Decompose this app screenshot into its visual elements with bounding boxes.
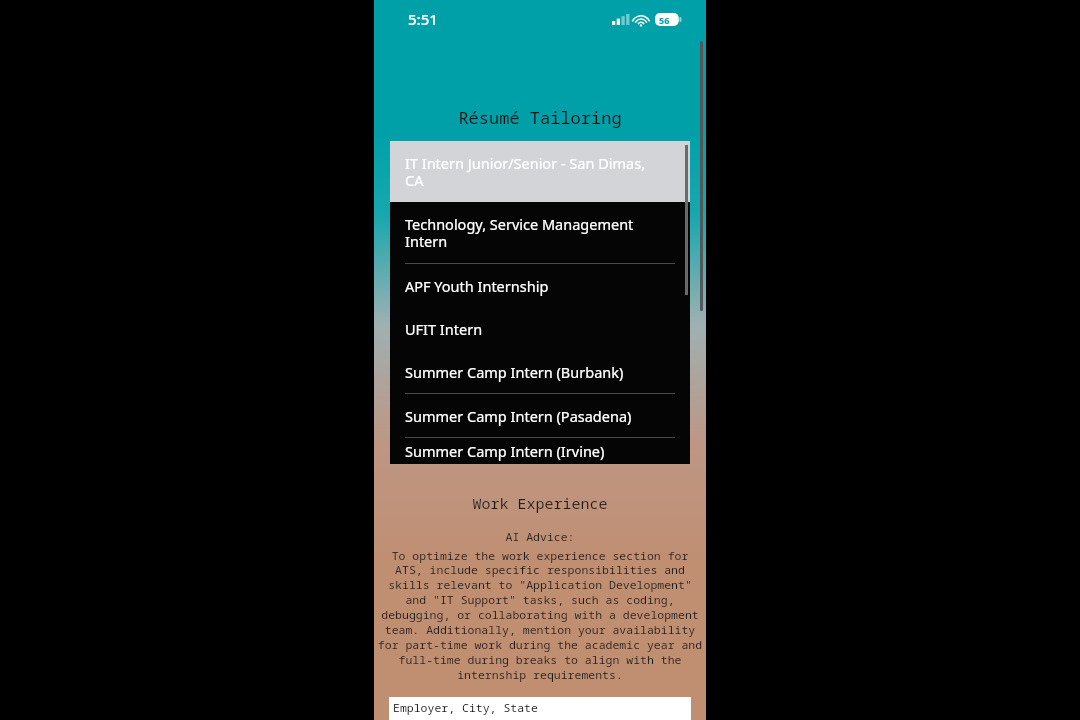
button[interactable]: Resume editor [389,697,691,720]
button[interactable]: Summer Camp Intern (Irvine) [390,438,690,464]
button[interactable]: Summer Camp Intern (Pasadena) [390,394,690,437]
staticText: Summer Camp Intern (Burbank) [405,362,624,382]
staticText: 56 [659,14,670,26]
button[interactable]: Summer Camp Intern (Burbank) [390,350,690,393]
staticText: UFIT Intern [405,319,483,339]
staticText: Summer Camp Intern (Pasadena) [405,406,632,426]
staticText: Employer, City, State [393,700,538,716]
staticText: 5:51 [408,9,438,29]
button[interactable]: IT Intern Junior/Senior - San Dimas, CA [390,141,690,202]
button[interactable]: APF Youth Internship [390,264,690,307]
staticText: IT Intern Junior/Senior - San Dimas, CA [405,153,666,190]
staticText: APF Youth Internship [405,276,549,296]
staticText: AI Advice: [374,529,706,545]
staticText: Summer Camp Intern (Irvine) [405,441,605,461]
staticText: Résumé Tailoring [374,106,706,129]
button[interactable]: Technology, Service Management Intern [390,202,690,263]
staticText: To optimize the work experience section … [377,548,703,683]
staticText: Technology, Service Management Intern [405,214,666,251]
button[interactable]: UFIT Intern [390,307,690,350]
staticText: Work Experience [374,493,706,513]
